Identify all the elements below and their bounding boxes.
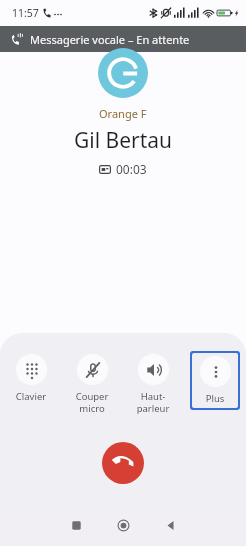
staticText: Orange F	[99, 106, 147, 121]
button[interactable]: Raccrocher	[102, 442, 144, 484]
button[interactable]: Retour	[147, 505, 194, 546]
button[interactable]: Clavier	[6, 351, 56, 406]
button[interactable]: Messagerie vocale – En attente	[0, 26, 246, 52]
staticText: Haut- parleur	[128, 390, 178, 414]
staticText: 11:57	[12, 6, 39, 20]
staticText: Clavier	[6, 390, 56, 403]
button[interactable]: Couper micro	[67, 351, 117, 417]
staticText: Messagerie vocale – En attente	[30, 32, 190, 47]
button[interactable]: Aperçu	[52, 505, 100, 546]
staticText: Plus	[192, 392, 238, 405]
button[interactable]: Accueil	[100, 505, 147, 546]
staticText: 00:03	[116, 161, 147, 177]
button[interactable]: Haut- parleur	[128, 351, 178, 417]
staticText: Gil Bertau	[74, 126, 173, 155]
button[interactable]: Plus	[192, 353, 238, 408]
staticText: Couper micro	[67, 390, 117, 414]
